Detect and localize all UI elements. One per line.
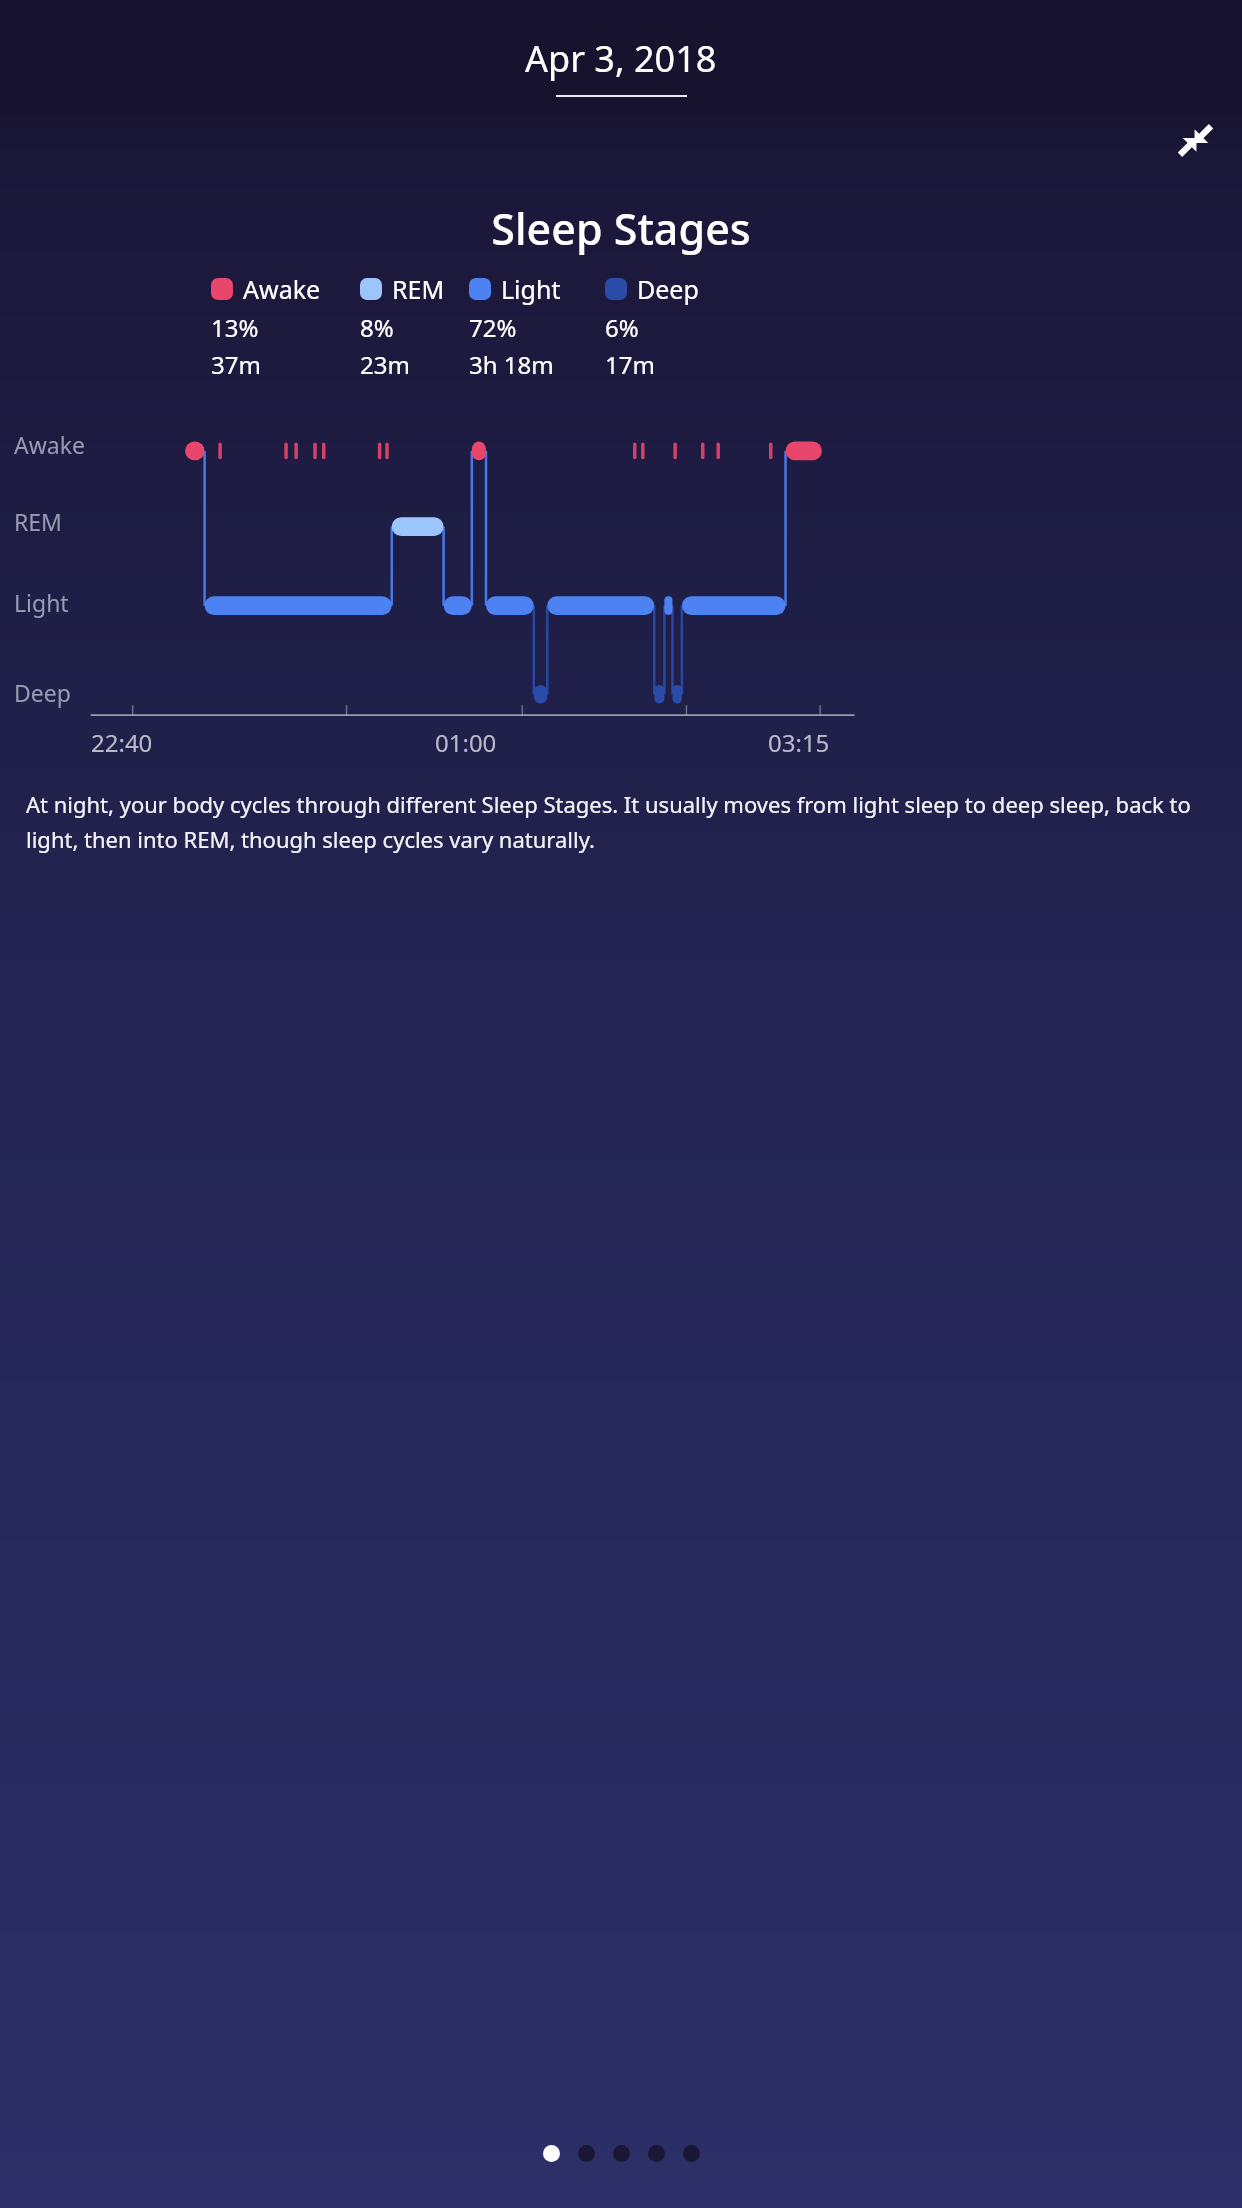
button[interactable]: Light <box>469 272 561 381</box>
staticText: 8% <box>360 311 394 344</box>
button[interactable]: Deep <box>605 272 699 381</box>
staticText: 22:40 <box>91 726 153 759</box>
button[interactable]: Page 5 <box>683 2145 700 2162</box>
staticText: Sleep Stages <box>0 199 1242 258</box>
staticText: 17m <box>605 348 655 381</box>
staticText: REM <box>14 506 62 537</box>
button[interactable]: REM <box>360 272 445 381</box>
staticText: Light <box>14 587 69 618</box>
staticText: Awake <box>14 429 85 460</box>
button[interactable]: Awake <box>211 272 321 381</box>
staticText: REM <box>392 272 445 306</box>
button[interactable]: Page 1 <box>543 2145 560 2162</box>
staticText: 13% <box>211 311 259 344</box>
button[interactable]: Page 4 <box>648 2145 665 2162</box>
staticText: Deep <box>637 272 699 306</box>
staticText: 6% <box>605 311 639 344</box>
button[interactable]: Page 3 <box>613 2145 630 2162</box>
staticText: 03:15 <box>768 726 830 759</box>
staticText: 23m <box>360 348 410 381</box>
staticText: 3h 18m <box>469 348 554 381</box>
staticText: 37m <box>211 348 261 381</box>
staticText: At night, your body cycles through diffe… <box>26 789 1216 855</box>
staticText: 72% <box>469 311 517 344</box>
staticText: 01:00 <box>435 726 497 759</box>
staticText: Apr 3, 2018 <box>525 34 717 83</box>
button[interactable]: Page 2 <box>578 2145 595 2162</box>
staticText: Light <box>501 272 561 306</box>
staticText: Awake <box>243 272 321 306</box>
staticText: Deep <box>14 677 71 708</box>
button[interactable]: Collapse <box>1172 117 1218 163</box>
